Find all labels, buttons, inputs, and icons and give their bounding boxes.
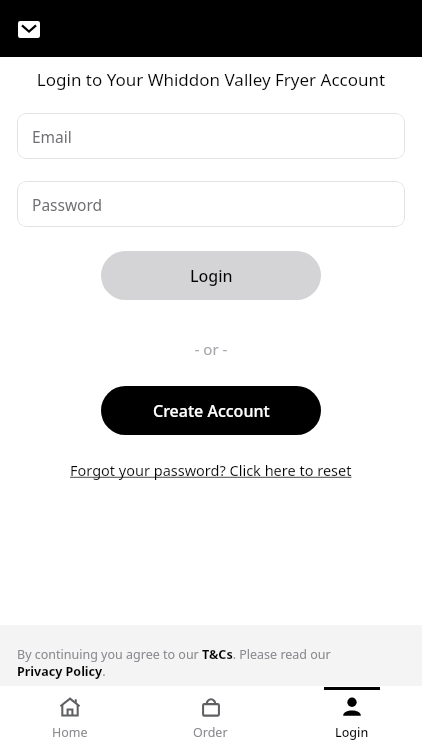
staticText: Login xyxy=(190,265,233,287)
staticText: - or - xyxy=(0,339,422,359)
button[interactable]: Login xyxy=(101,251,321,300)
button[interactable]: Create Account xyxy=(101,386,321,435)
button[interactable]: Messages xyxy=(12,12,46,46)
staticText: Create Account xyxy=(153,400,270,422)
staticText: Home xyxy=(52,724,88,741)
staticText: Email xyxy=(32,126,72,147)
staticText: Password xyxy=(32,194,103,215)
staticText: Login xyxy=(335,724,369,741)
staticText: Login to Your Whiddon Valley Fryer Accou… xyxy=(0,68,422,91)
button[interactable]: Forgot your password? Click here to rese… xyxy=(64,457,358,483)
button[interactable]: Password xyxy=(17,181,405,227)
button[interactable]: Login xyxy=(281,686,422,750)
button[interactable]: Home xyxy=(0,686,140,750)
staticText: Forgot your password? Click here to rese… xyxy=(70,460,352,480)
button[interactable]: Order xyxy=(140,686,281,750)
staticText: Order xyxy=(193,724,228,741)
staticText: By continuing you agree to our T&Cs. Ple… xyxy=(17,646,376,680)
button[interactable]: Email xyxy=(17,113,405,159)
